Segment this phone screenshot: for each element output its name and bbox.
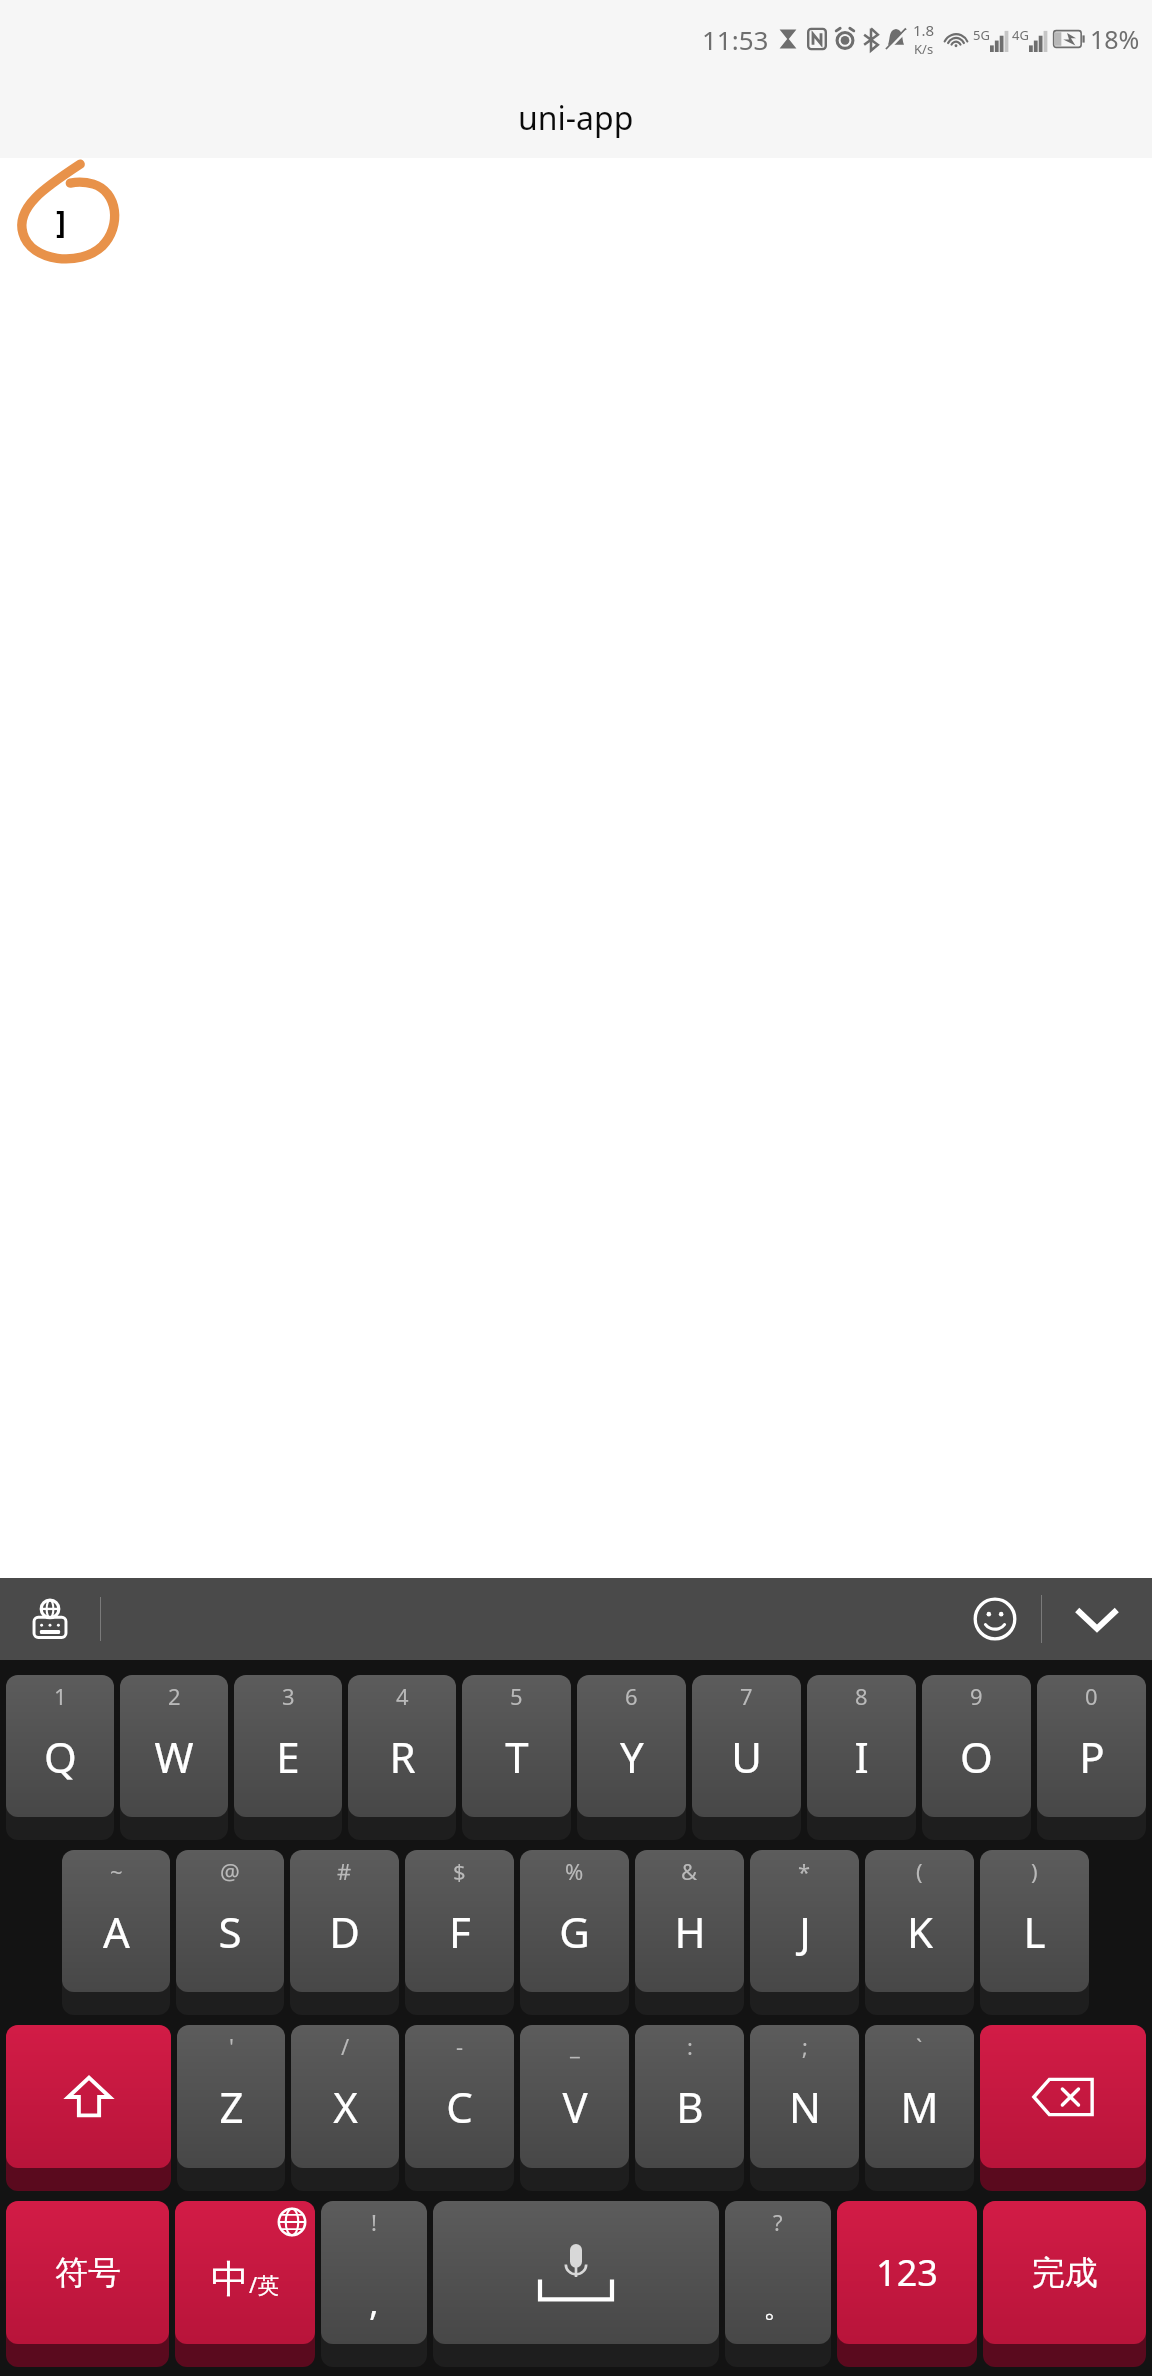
staticText: `: [916, 2031, 923, 2061]
staticText: N: [789, 2078, 821, 2135]
staticText: W: [154, 1728, 194, 1785]
button[interactable]: (: [865, 1850, 974, 2015]
staticText: 11:53: [702, 22, 769, 57]
button[interactable]: 6: [577, 1675, 686, 1840]
staticText: P: [1079, 1728, 1105, 1785]
button[interactable]: 9: [922, 1675, 1031, 1840]
button[interactable]: 8: [807, 1675, 916, 1840]
button[interactable]: `: [865, 2025, 974, 2191]
staticText: K: [907, 1903, 933, 1960]
button[interactable]: $: [405, 1850, 514, 2015]
staticText: $: [453, 1856, 466, 1886]
staticText: 4: [396, 1681, 409, 1711]
button[interactable]: /: [291, 2025, 399, 2191]
staticText: &: [681, 1856, 698, 1886]
staticText: I: [854, 1728, 869, 1785]
staticText: 1: [54, 1681, 67, 1711]
staticText: K/s: [914, 40, 934, 58]
button[interactable]: Shift: [6, 2025, 171, 2191]
staticText: ;: [802, 2031, 808, 2061]
button[interactable]: 3: [234, 1675, 342, 1840]
staticText: 中: [211, 2255, 249, 2303]
button[interactable]: 符号: [6, 2201, 169, 2367]
button[interactable]: 0: [1037, 1675, 1146, 1840]
staticText: 6: [625, 1681, 638, 1711]
staticText: 4G: [1012, 26, 1029, 44]
staticText: Y: [620, 1728, 644, 1785]
staticText: G: [559, 1903, 590, 1960]
button[interactable]: ?: [725, 2201, 831, 2367]
staticText: /英: [249, 2269, 280, 2299]
staticText: _: [570, 2031, 580, 2061]
button[interactable]: 中: [175, 2201, 315, 2367]
staticText: T: [505, 1728, 529, 1785]
button[interactable]: Backspace: [980, 2025, 1146, 2191]
staticText: 9: [970, 1681, 983, 1711]
staticText: uni-app: [518, 96, 634, 140]
button[interactable]: ): [980, 1850, 1089, 2015]
staticText: 5: [510, 1681, 523, 1711]
staticText: O: [960, 1728, 993, 1785]
staticText: *: [798, 1856, 811, 1886]
staticText: Q: [44, 1728, 77, 1785]
staticText: C: [446, 2078, 473, 2135]
staticText: 7: [740, 1681, 753, 1711]
staticText: :: [687, 2031, 693, 2061]
staticText: @: [220, 1856, 240, 1886]
staticText: R: [389, 1728, 416, 1785]
button[interactable]: _: [520, 2025, 629, 2191]
staticText: A: [103, 1903, 130, 1960]
staticText: %: [565, 1856, 584, 1886]
staticText: 2: [168, 1681, 181, 1711]
staticText: M: [900, 2078, 939, 2135]
button[interactable]: 4: [348, 1675, 456, 1840]
staticText: F: [449, 1903, 471, 1960]
button[interactable]: ;: [750, 2025, 859, 2191]
staticText: /: [341, 2031, 350, 2061]
button[interactable]: :: [635, 2025, 744, 2191]
staticText: 5G: [973, 26, 990, 44]
staticText: #: [337, 1856, 352, 1886]
button[interactable]: #: [290, 1850, 399, 2015]
button[interactable]: 完成: [983, 2201, 1146, 2367]
button[interactable]: 2: [120, 1675, 228, 1840]
staticText: (: [916, 1856, 923, 1886]
staticText: U: [731, 1728, 762, 1785]
button[interactable]: 5: [462, 1675, 571, 1840]
button[interactable]: *: [750, 1850, 859, 2015]
button[interactable]: ': [177, 2025, 285, 2191]
staticText: !: [371, 2207, 377, 2237]
staticText: B: [676, 2078, 704, 2135]
button[interactable]: %: [520, 1850, 629, 2015]
button[interactable]: -: [405, 2025, 514, 2191]
staticText: 123: [876, 2248, 938, 2297]
button[interactable]: Hide keyboard: [1042, 1578, 1152, 1660]
staticText: X: [333, 2078, 358, 2135]
staticText: 8: [855, 1681, 868, 1711]
staticText: E: [276, 1728, 300, 1785]
staticText: ?: [773, 2207, 783, 2237]
staticText: D: [329, 1903, 360, 1960]
staticText: S: [218, 1903, 242, 1960]
staticText: -: [456, 2031, 464, 2061]
staticText: 完成: [1032, 2252, 1098, 2294]
staticText: V: [562, 2078, 588, 2135]
staticText: 符号: [55, 2252, 121, 2294]
button[interactable]: Input method settings: [0, 1578, 100, 1660]
staticText: 1.8: [913, 20, 935, 40]
staticText: J: [799, 1903, 811, 1960]
staticText: 0: [1085, 1681, 1098, 1711]
staticText: ,: [369, 2277, 379, 2326]
staticText: 。: [763, 2288, 793, 2326]
button[interactable]: Emoji: [949, 1578, 1041, 1660]
button[interactable]: Space: [433, 2201, 719, 2367]
staticText: H: [674, 1903, 706, 1960]
button[interactable]: 123: [837, 2201, 977, 2367]
button[interactable]: !: [321, 2201, 427, 2367]
button[interactable]: @: [176, 1850, 284, 2015]
button[interactable]: ~: [62, 1850, 170, 2015]
button[interactable]: &: [635, 1850, 744, 2015]
button[interactable]: 7: [692, 1675, 801, 1840]
staticText: Z: [219, 2078, 244, 2135]
button[interactable]: 1: [6, 1675, 114, 1840]
